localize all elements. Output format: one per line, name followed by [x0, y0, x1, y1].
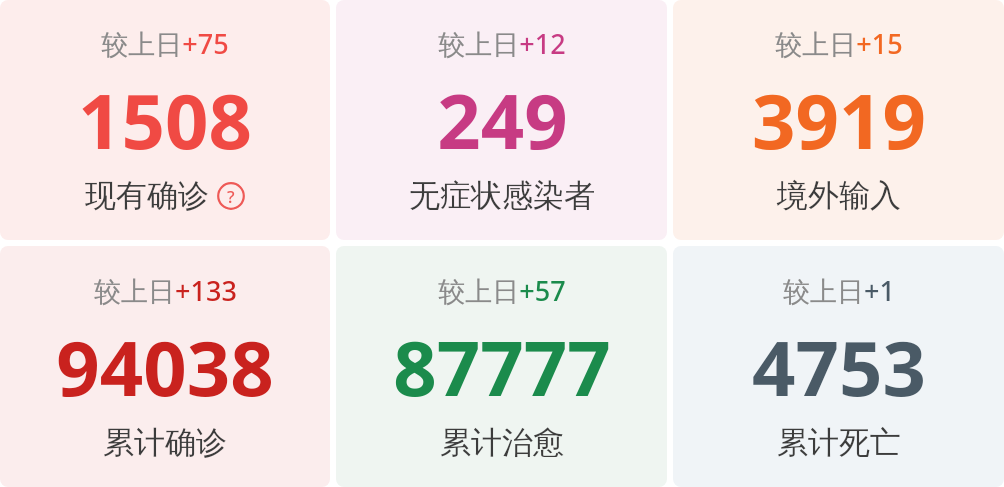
- staticText: 累计死亡: [777, 423, 901, 462]
- staticText: 3919: [752, 68, 926, 172]
- button[interactable]: 帮助说明: [217, 182, 245, 210]
- button[interactable]: 较上日+12: [336, 0, 667, 240]
- staticText: 较上日+12: [438, 25, 566, 62]
- staticText: 较上日+133: [94, 272, 237, 309]
- staticText: 较上日+75: [101, 25, 229, 62]
- staticText: 累计确诊: [103, 423, 227, 462]
- staticText: 较上日+1: [783, 272, 895, 309]
- staticText: 现有确诊: [85, 176, 209, 215]
- button[interactable]: 较上日+133: [0, 246, 330, 487]
- staticText: 较上日+57: [438, 272, 566, 309]
- staticText: ?: [227, 185, 235, 208]
- staticText: 4753: [752, 315, 926, 419]
- staticText: 累计治愈: [440, 423, 564, 462]
- button[interactable]: 较上日+1: [673, 246, 1004, 487]
- button[interactable]: 较上日+15: [673, 0, 1004, 240]
- staticText: 249: [437, 68, 568, 172]
- button[interactable]: 较上日+75: [0, 0, 330, 240]
- staticText: 87777: [393, 315, 611, 419]
- staticText: 较上日+15: [775, 25, 903, 62]
- staticText: 94038: [56, 315, 274, 419]
- button[interactable]: 较上日+57: [336, 246, 667, 487]
- staticText: 1508: [78, 68, 252, 172]
- staticText: 无症状感染者: [409, 176, 595, 215]
- staticText: 境外输入: [777, 176, 901, 215]
